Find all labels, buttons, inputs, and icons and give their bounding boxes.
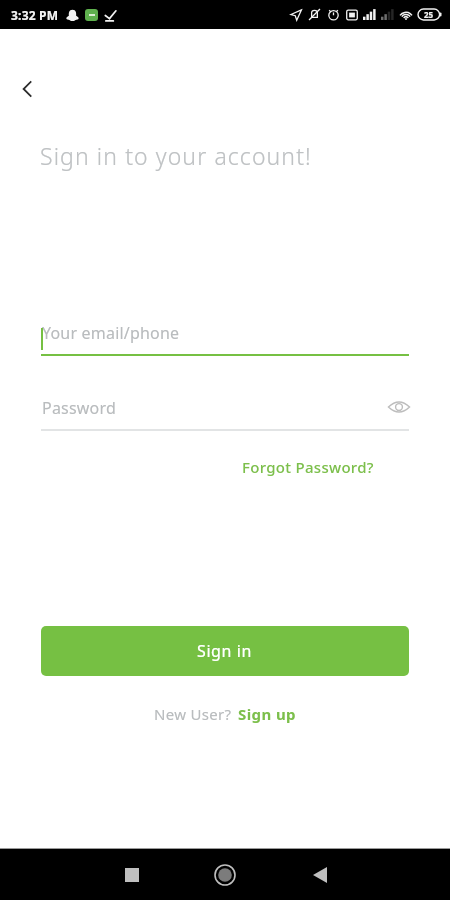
staticText: Forgot Password? xyxy=(242,457,374,477)
staticText: Sign up xyxy=(238,704,296,724)
staticText: Your email/phone xyxy=(42,322,180,344)
staticText: Sign in xyxy=(197,640,253,662)
staticText: Password xyxy=(42,397,116,419)
staticText: Sign in to your account! xyxy=(40,140,312,171)
button[interactable]: Your email/phone xyxy=(41,319,409,356)
button[interactable]: Sign in xyxy=(41,626,409,676)
button[interactable]: Show password xyxy=(381,389,417,425)
button[interactable]: Sign up xyxy=(238,704,296,724)
staticText: New User? xyxy=(154,704,232,724)
staticText: 25 xyxy=(424,9,434,20)
button[interactable]: Back xyxy=(296,851,344,899)
button[interactable]: Forgot Password? xyxy=(236,453,380,481)
button[interactable]: Back xyxy=(4,65,52,113)
button[interactable]: Home xyxy=(201,851,249,899)
button[interactable]: Recent apps xyxy=(108,851,156,899)
button[interactable]: Password xyxy=(41,394,409,431)
staticText: 3:32 PM xyxy=(11,7,59,23)
